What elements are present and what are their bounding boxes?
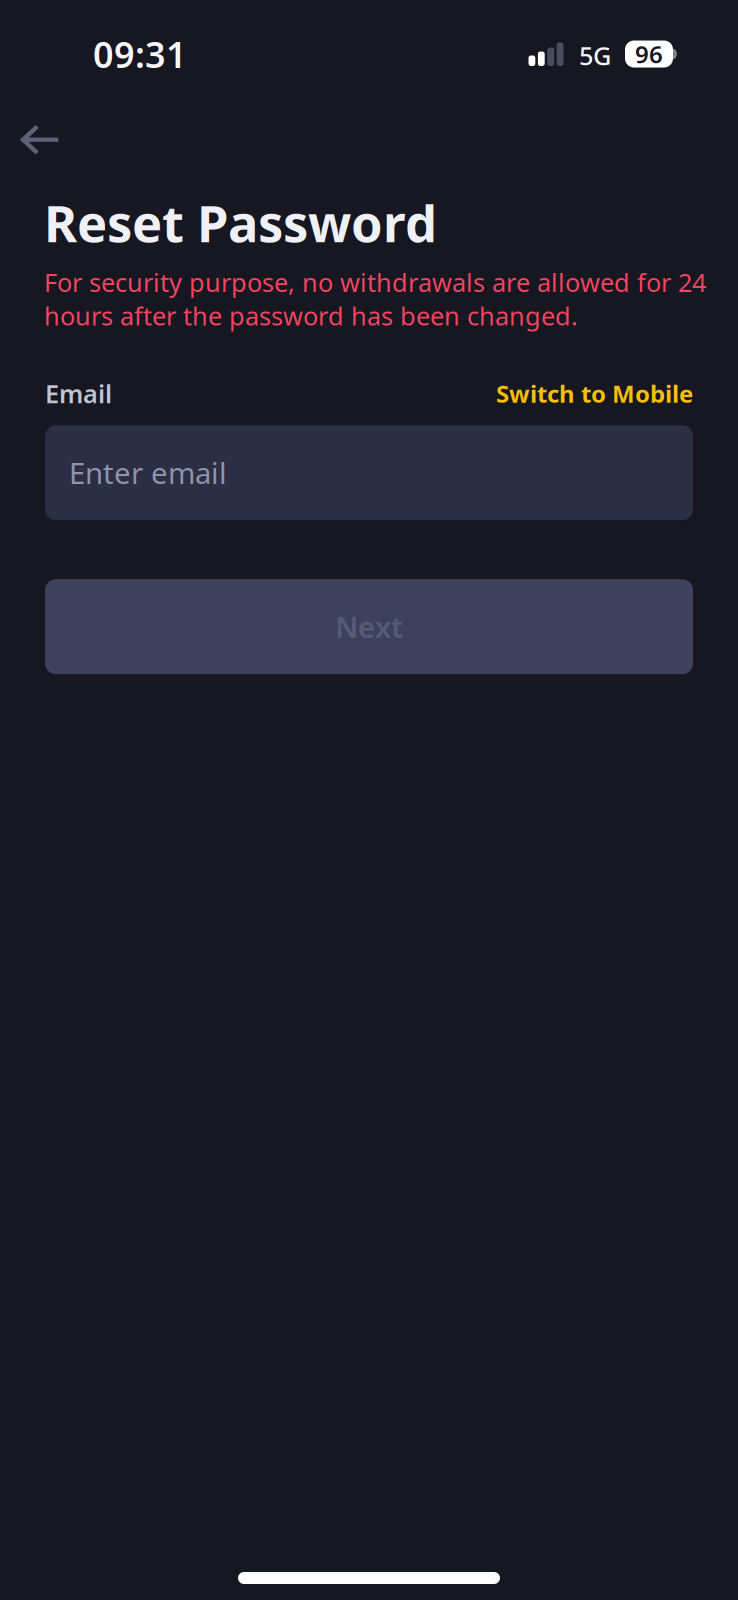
staticText: hours after the password has been change… [44, 299, 578, 332]
button[interactable]: Next [45, 579, 693, 674]
staticText: 96 [635, 38, 663, 70]
staticText: Enter email [69, 453, 227, 492]
button[interactable]: Email, Enter email [45, 425, 693, 520]
staticText: 5G [579, 39, 611, 72]
staticText: For security purpose, no withdrawals are… [44, 265, 706, 299]
staticText: Next [335, 607, 403, 646]
staticText: Switch to Mobile [496, 377, 693, 409]
staticText: Email [45, 377, 112, 410]
button[interactable]: Switch to Mobile [496, 377, 693, 409]
staticText: 09:31 [93, 30, 187, 78]
staticText: Reset Password [44, 189, 437, 256]
button[interactable]: Back [0, 108, 85, 171]
